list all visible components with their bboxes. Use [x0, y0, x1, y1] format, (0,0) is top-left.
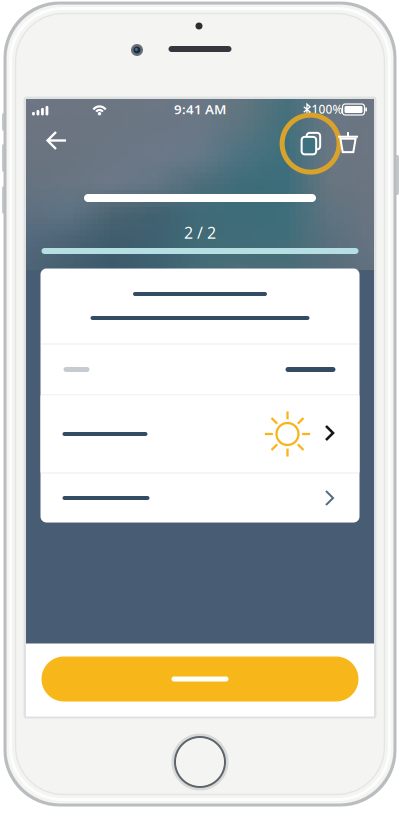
button[interactable]: Delete [329, 123, 367, 163]
staticText: 9:41 AM [174, 100, 226, 118]
staticText: 100% [311, 101, 342, 117]
staticText: 2 / 2 [184, 222, 216, 243]
button[interactable] [40, 395, 359, 472]
button[interactable] [41, 656, 358, 701]
button[interactable]: Back [30, 120, 74, 160]
button[interactable]: Duplicate [291, 124, 331, 164]
button[interactable] [40, 344, 359, 394]
button[interactable] [40, 473, 359, 522]
